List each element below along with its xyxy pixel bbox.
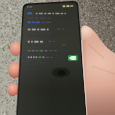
button[interactable]: Phone held in a hand showing a messaging… bbox=[0, 0, 115, 115]
